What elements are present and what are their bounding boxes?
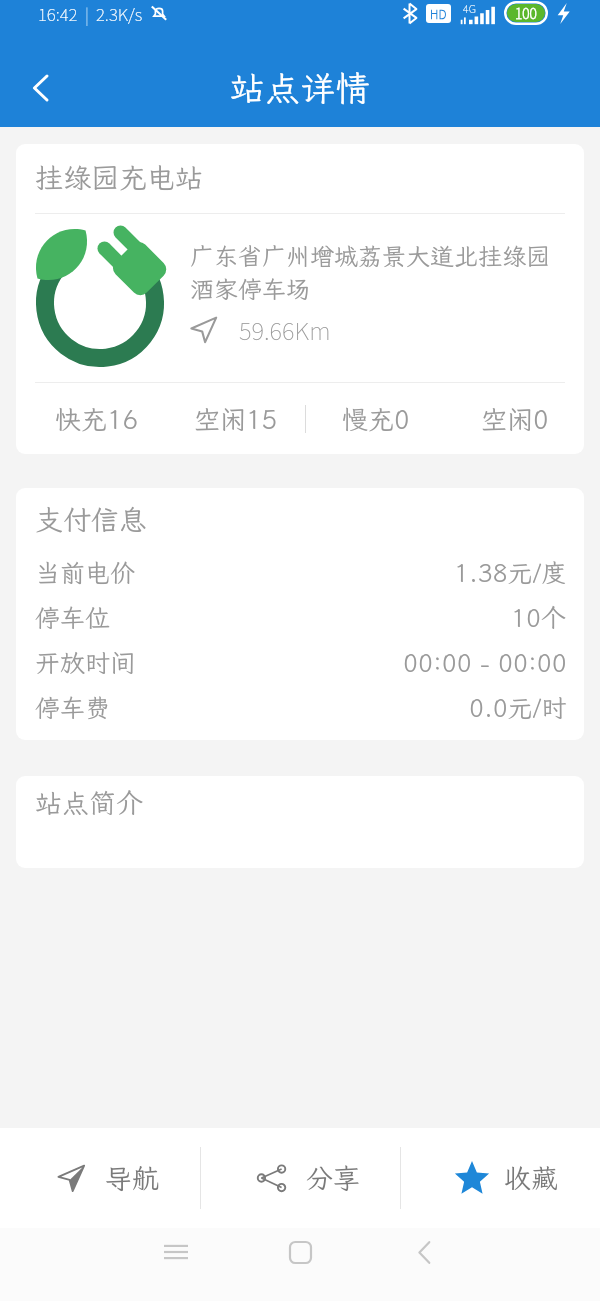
button[interactable]: Back [400,1228,448,1276]
staticText: 挂绿园充电站 [35,159,204,196]
staticText: 支付信息 [35,501,148,538]
staticText: 00:00 - 00:00 [403,646,567,679]
staticText: 导航 [105,1160,159,1196]
button[interactable]: 导航 [0,1128,200,1228]
staticText: 59.66Km [239,312,331,347]
staticText: HD [430,5,447,22]
staticText: 16:42 [38,1,78,26]
staticText: 广东省广州增城荔景大道北挂绿园酒家停车场 [190,240,554,305]
staticText: 1.38元/度 [454,556,567,589]
button[interactable]: 分享 [201,1128,400,1228]
button[interactable]: Back [14,61,68,115]
staticText: 分享 [306,1160,360,1196]
staticText: 0.0元/时 [469,691,567,724]
button[interactable]: Menu [152,1228,200,1276]
staticText: 开放时间 [35,646,136,679]
staticText: 站点简介 [35,785,143,821]
staticText: 10个 [511,601,567,634]
staticText: 4G [463,0,477,16]
staticText: 停车位 [35,601,111,634]
staticText: 100 [515,3,537,23]
button[interactable]: 收藏 [401,1128,600,1228]
staticText: 停车费 [35,691,111,724]
staticText: 站点详情 [230,65,371,111]
staticText: | [85,2,89,25]
staticText: 慢充0 [342,402,410,436]
button[interactable]: Home [276,1228,324,1276]
staticText: 收藏 [504,1160,558,1196]
staticText: 空闲15 [194,402,278,436]
staticText: 快充16 [55,402,139,436]
staticText: 2.3K/s [96,1,143,26]
staticText: 空闲0 [481,402,549,436]
staticText: 当前电价 [35,556,136,589]
